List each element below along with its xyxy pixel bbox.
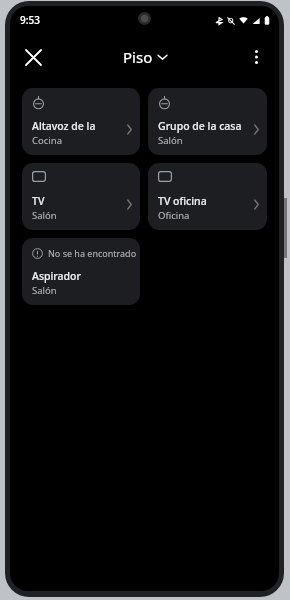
staticText: Piso: [123, 47, 153, 67]
staticText: Cocina: [32, 134, 62, 147]
staticText: Aspirador: [32, 269, 81, 283]
button[interactable]: TV: [22, 163, 140, 230]
button[interactable]: Close: [14, 38, 52, 76]
button[interactable]: More options: [237, 38, 275, 76]
staticText: Oficina: [158, 209, 190, 222]
staticText: Salón: [32, 209, 57, 222]
button[interactable]: Grupo de la casa: [148, 88, 267, 155]
button[interactable]: Piso: [117, 43, 173, 71]
staticText: Salón: [32, 284, 57, 297]
staticText: No se ha encontrado: [48, 247, 137, 259]
button[interactable]: TV oficina: [148, 163, 267, 230]
button[interactable]: No se ha encontrado: [22, 238, 140, 305]
staticText: Grupo de la casa: [158, 119, 242, 133]
staticText: TV oficina: [158, 194, 207, 208]
staticText: Altavoz de la cocina: [32, 119, 118, 133]
staticText: TV: [32, 194, 45, 208]
staticText: Salón: [158, 134, 183, 147]
staticText: 9:53: [20, 13, 40, 27]
button[interactable]: Altavoz de la cocina: [22, 88, 140, 155]
